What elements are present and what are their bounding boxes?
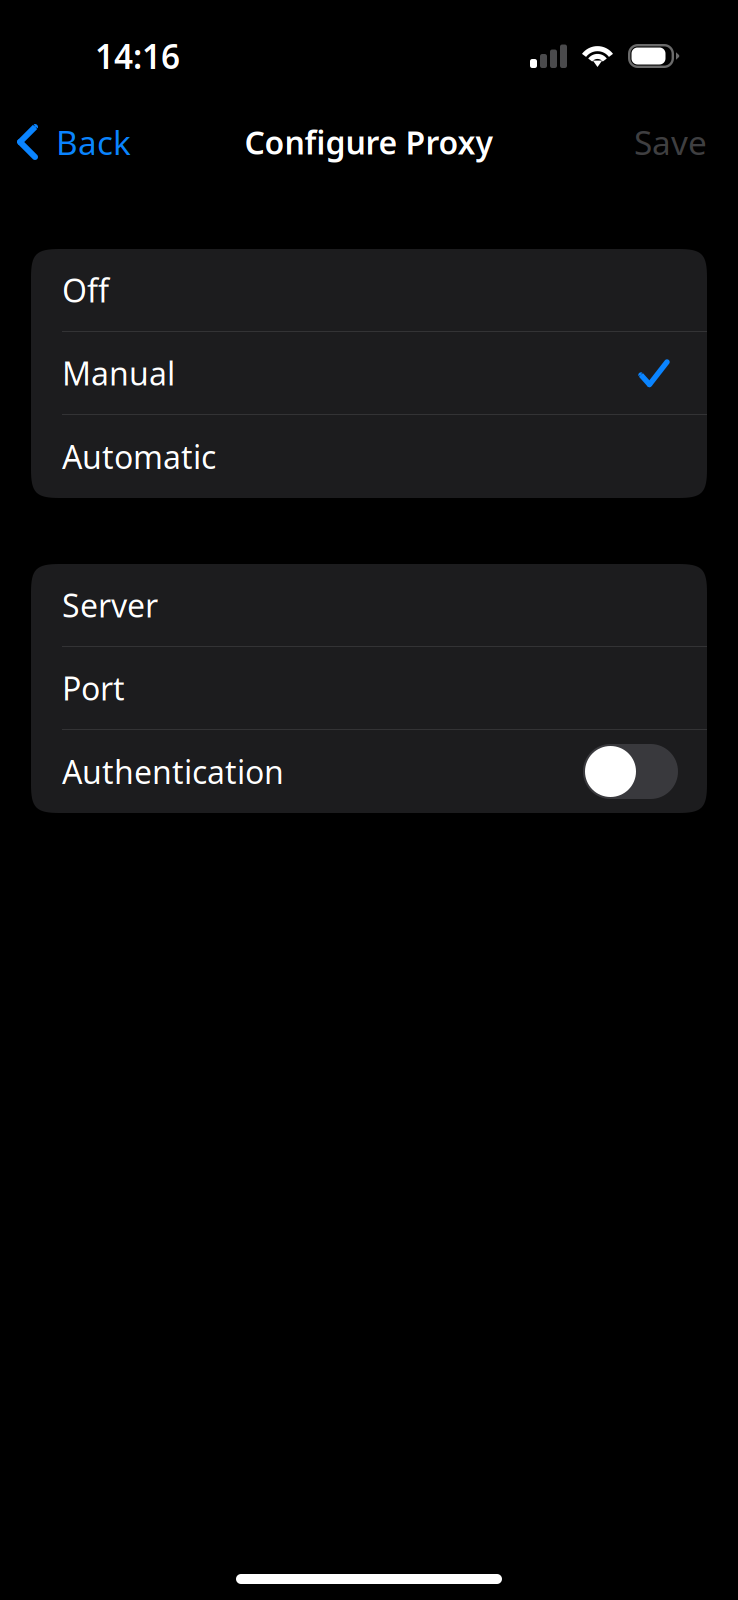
staticText: Off — [62, 269, 109, 311]
staticText: Back — [56, 120, 131, 164]
button[interactable]: Port — [31, 647, 707, 730]
staticText: Save — [634, 120, 707, 164]
button[interactable]: Back — [0, 106, 143, 178]
staticText: Authentication — [62, 750, 284, 793]
staticText: 14:16 — [95, 34, 180, 78]
button[interactable]: Save — [610, 106, 707, 178]
staticText: Configure Proxy — [244, 121, 493, 163]
staticText: Manual — [62, 352, 175, 394]
button[interactable]: Automatic — [31, 415, 707, 498]
button[interactable]: Authentication — [583, 744, 678, 799]
button[interactable]: Server — [31, 564, 707, 647]
staticText: Port — [62, 667, 125, 709]
button[interactable]: Off — [31, 249, 707, 332]
staticText: Server — [62, 584, 158, 626]
button[interactable]: Manual — [31, 332, 707, 415]
staticText: Automatic — [62, 435, 216, 478]
